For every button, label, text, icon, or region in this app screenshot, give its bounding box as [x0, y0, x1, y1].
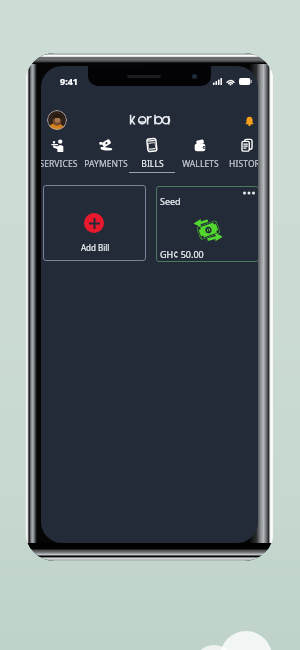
staticText: PAYMENTS: [84, 158, 128, 170]
staticText: HISTORY: [229, 158, 258, 170]
button[interactable]: More options: [240, 187, 258, 199]
button[interactable]: Add Bill: [43, 185, 146, 261]
staticText: Add Bill: [81, 242, 110, 253]
staticText: GH¢ 50.00: [160, 248, 204, 260]
staticText: 9:41: [60, 75, 78, 87]
staticText: Seed: [160, 195, 181, 207]
button[interactable]: HISTORY: [217, 138, 258, 170]
staticText: WALLETS: [182, 158, 219, 170]
button[interactable]: WALLETS: [170, 138, 230, 170]
button[interactable]: Seed: [156, 186, 258, 262]
button[interactable]: Notifications: [244, 115, 255, 126]
button[interactable]: SERVICES: [41, 138, 88, 170]
button[interactable]: Profile: [47, 110, 67, 130]
button[interactable]: BILLS: [122, 138, 182, 170]
button[interactable]: PAYMENTS: [76, 138, 136, 170]
staticText: SERVICES: [41, 158, 78, 170]
staticText: BILLS: [141, 158, 164, 170]
other: kerba: [128, 112, 174, 127]
